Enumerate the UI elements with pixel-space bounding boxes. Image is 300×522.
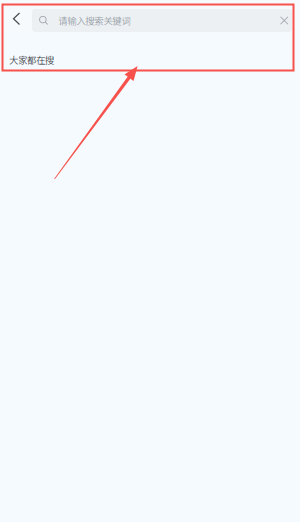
button[interactable]: 请输入搜索关键词 — [32, 9, 292, 32]
button[interactable]: Back — [0, 0, 28, 36]
staticText: 大家都在搜 — [9, 53, 54, 66]
button[interactable]: Clear search text — [274, 11, 292, 30]
staticText: 请输入搜索关键词 — [58, 14, 130, 27]
